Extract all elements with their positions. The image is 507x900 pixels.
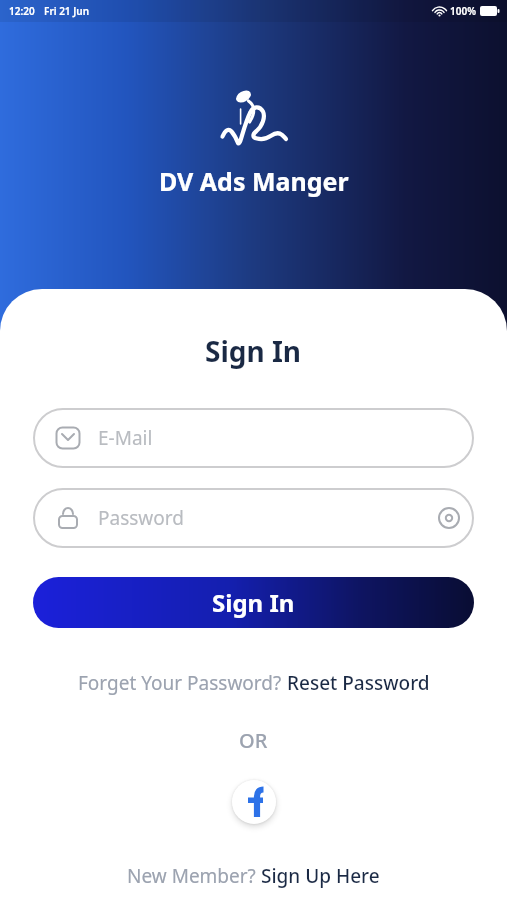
staticText: 12:20	[9, 4, 35, 18]
button[interactable]: Reset Password	[287, 670, 430, 696]
button[interactable]: Sign In	[33, 577, 474, 628]
staticText: Fri 21 Jun	[44, 4, 90, 18]
button[interactable]	[232, 780, 276, 824]
staticText: Password	[98, 505, 437, 531]
staticText: Sign In	[205, 332, 302, 370]
staticText: New Member?	[127, 863, 261, 889]
staticText: Sign In	[212, 586, 295, 619]
staticText: Forget Your Password?	[78, 670, 287, 696]
button[interactable]	[437, 506, 461, 530]
staticText: 100%	[450, 4, 476, 18]
staticText: DV Ads Manger	[159, 164, 349, 198]
button[interactable]: E-Mail	[33, 408, 474, 468]
staticText: E-Mail	[98, 425, 153, 451]
button[interactable]: Password	[33, 488, 474, 548]
button[interactable]: Sign Up Here	[261, 863, 380, 889]
staticText: OR	[239, 727, 268, 754]
